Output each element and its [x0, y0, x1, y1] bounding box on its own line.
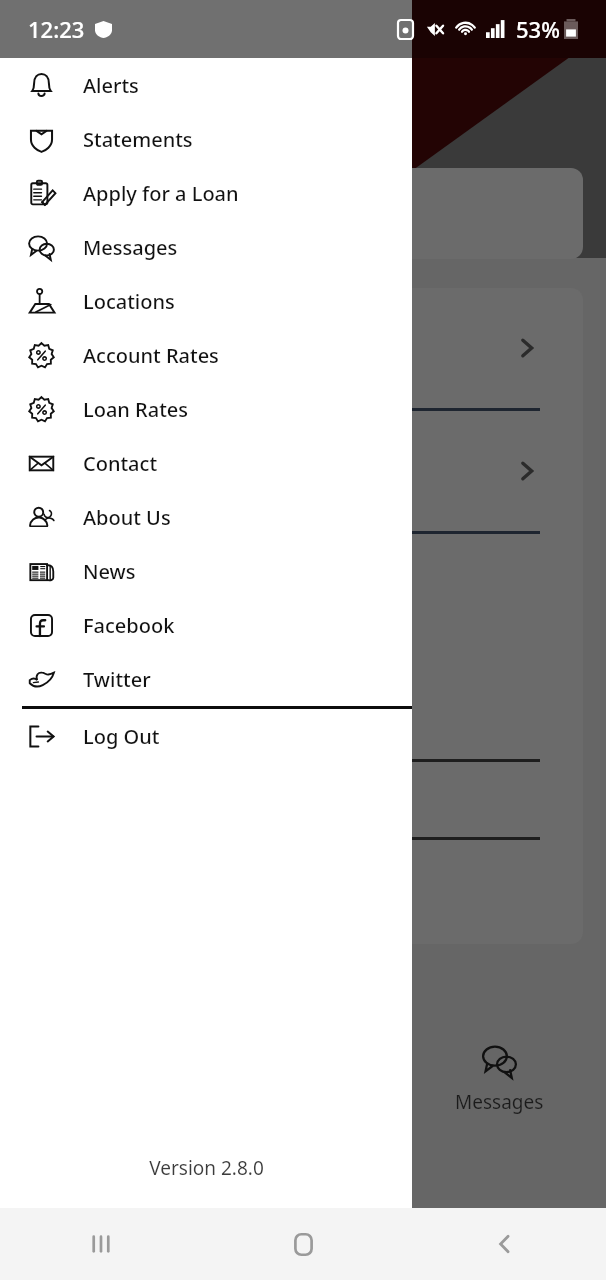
button[interactable]: Account Rates — [0, 328, 412, 382]
button[interactable] — [168, 534, 583, 759]
staticText: Payments Scheduled — [188, 199, 394, 228]
button[interactable]: Log Out — [0, 709, 412, 763]
button[interactable]: Back — [404, 1208, 606, 1280]
staticText: About Us — [83, 504, 171, 531]
button[interactable]: News — [0, 544, 412, 598]
button[interactable]: Messages — [431, 1023, 568, 1133]
button[interactable] — [168, 762, 583, 837]
button[interactable]: Messages — [0, 220, 412, 274]
staticText: Log Out — [83, 723, 160, 750]
staticText: Contact — [83, 450, 158, 477]
staticText: Messages — [455, 1089, 544, 1115]
staticText: Alerts — [83, 72, 139, 99]
button[interactable]: Twitter — [0, 652, 412, 706]
staticText: 53% — [516, 14, 560, 44]
button[interactable]: Apply for a Loan — [0, 166, 412, 220]
staticText: Twitter — [83, 666, 151, 693]
button[interactable]: Recent apps — [0, 1208, 202, 1280]
staticText: Account Rates — [83, 342, 219, 369]
staticText: Loan Rates — [83, 396, 189, 423]
button[interactable]: Loan Rates — [0, 382, 412, 436]
staticText: Statements — [83, 126, 193, 153]
staticText: Locations — [83, 288, 175, 315]
staticText: Apply for a Loan — [83, 180, 239, 207]
button[interactable]: Bill Pay — [294, 1023, 431, 1133]
staticText: News — [83, 558, 136, 585]
button[interactable]: Locations — [0, 274, 412, 328]
button[interactable]: About Us — [0, 490, 412, 544]
button[interactable] — [168, 288, 583, 408]
button[interactable]: Statements — [0, 112, 412, 166]
staticText: Facebook — [83, 612, 175, 639]
button[interactable] — [168, 411, 583, 531]
button[interactable]: Facebook — [0, 598, 412, 652]
staticText: Version 2.8.0 — [149, 1155, 264, 1181]
button[interactable]: Home — [202, 1208, 404, 1280]
button[interactable]: Payments Scheduled — [168, 168, 583, 259]
button[interactable]: Alerts — [0, 58, 412, 112]
staticText: Messages — [83, 234, 178, 261]
button[interactable]: Contact — [0, 436, 412, 490]
staticText: 12:23 — [28, 14, 85, 44]
